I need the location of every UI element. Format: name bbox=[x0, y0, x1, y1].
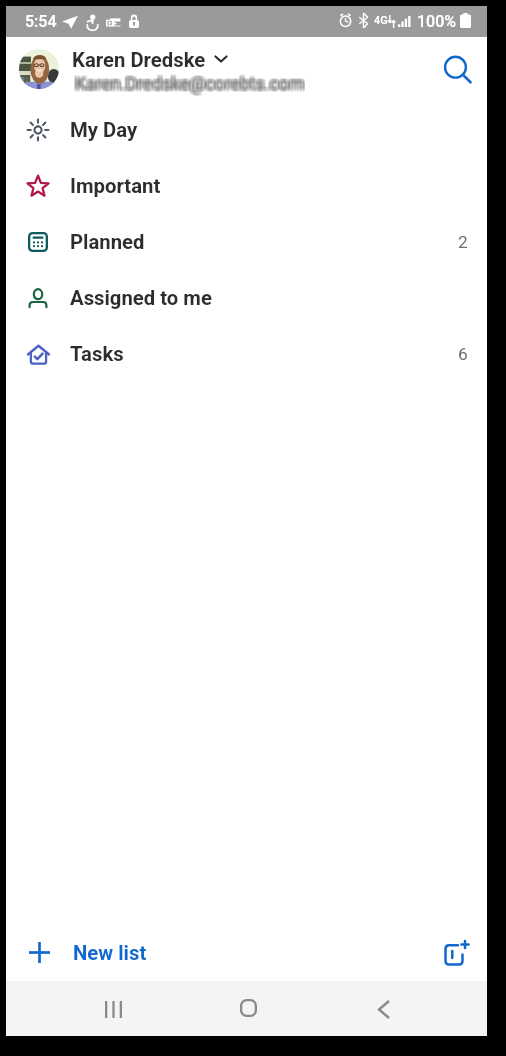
staticText: Karen.Dredske@corebts.com bbox=[76, 73, 306, 94]
button[interactable]: Recent apps bbox=[86, 982, 140, 1036]
staticText: Karen.Dredske@corebts.com bbox=[77, 73, 307, 94]
staticText: Karen.Dredske@corebts.com bbox=[77, 75, 307, 96]
staticText: Karen.Dredske@corebts.com bbox=[77, 76, 307, 97]
button[interactable] bbox=[6, 43, 431, 101]
staticText: Important bbox=[70, 174, 161, 198]
staticText: Karen.Dredske@corebts.com bbox=[75, 76, 305, 97]
staticText: Karen.Dredske@corebts.com bbox=[76, 73, 306, 94]
staticText: Karen.Dredske@corebts.com bbox=[77, 73, 307, 94]
staticText: Karen.Dredske@corebts.com bbox=[75, 75, 305, 96]
staticText: Karen.Dredske@corebts.com bbox=[76, 74, 306, 95]
staticText: Karen.Dredske@corebts.com bbox=[77, 73, 307, 94]
staticText: Karen.Dredske@corebts.com bbox=[77, 75, 307, 96]
staticText: 6 bbox=[458, 344, 468, 364]
staticText: 4G bbox=[374, 14, 388, 27]
staticText: Karen.Dredske@corebts.com bbox=[74, 73, 304, 94]
staticText: Karen.Dredske@corebts.com bbox=[77, 76, 307, 97]
staticText: Tasks bbox=[70, 342, 124, 366]
staticText: New list bbox=[73, 941, 147, 965]
staticText: Karen.Dredske@corebts.com bbox=[77, 72, 307, 93]
staticText: Karen.Dredske@corebts.com bbox=[73, 73, 303, 94]
staticText: Karen.Dredske@corebts.com bbox=[74, 74, 304, 95]
staticText: Karen.Dredske@corebts.com bbox=[76, 72, 306, 93]
staticText: Karen.Dredske@corebts.com bbox=[73, 75, 303, 96]
staticText: Karen.Dredske@corebts.com bbox=[77, 74, 307, 95]
staticText: Karen.Dredske@corebts.com bbox=[74, 75, 304, 96]
staticText: Karen.Dredske@corebts.com bbox=[77, 73, 307, 94]
staticText: Karen.Dredske@corebts.com bbox=[73, 76, 303, 97]
staticText: Karen.Dredske@corebts.com bbox=[74, 74, 304, 95]
staticText: Karen.Dredske@corebts.com bbox=[76, 75, 306, 96]
staticText: Karen.Dredske@corebts.com bbox=[73, 72, 303, 93]
staticText: Karen.Dredske@corebts.com bbox=[73, 72, 303, 93]
staticText: Karen.Dredske@corebts.com bbox=[73, 74, 303, 95]
staticText: Karen.Dredske@corebts.com bbox=[74, 73, 304, 94]
staticText: Karen.Dredske@corebts.com bbox=[76, 73, 306, 94]
staticText: 100% bbox=[417, 12, 457, 31]
staticText: Planned bbox=[70, 230, 145, 254]
staticText: Karen.Dredske@corebts.com bbox=[76, 75, 306, 96]
staticText: Karen.Dredske@corebts.com bbox=[76, 75, 306, 96]
staticText: Karen.Dredske@corebts.com bbox=[77, 74, 307, 95]
staticText: Karen.Dredske@corebts.com bbox=[74, 75, 304, 96]
staticText: Assigned to me bbox=[70, 286, 212, 310]
staticText: Karen.Dredske@corebts.com bbox=[73, 75, 303, 96]
staticText: 2 bbox=[458, 232, 468, 252]
staticText: Karen.Dredske@corebts.com bbox=[77, 75, 307, 96]
staticText: Karen.Dredske@corebts.com bbox=[73, 73, 303, 94]
staticText: Karen.Dredske@corebts.com bbox=[76, 76, 306, 97]
button[interactable]: Home bbox=[221, 981, 275, 1035]
button[interactable]: My Day bbox=[6, 100, 487, 156]
staticText: Karen.Dredske@corebts.com bbox=[76, 75, 306, 96]
staticText: 5:54 bbox=[25, 12, 57, 31]
button[interactable]: Back bbox=[357, 982, 411, 1036]
staticText: Karen.Dredske@corebts.com bbox=[75, 72, 305, 93]
staticText: Karen.Dredske@corebts.com bbox=[74, 75, 304, 96]
staticText: Karen.Dredske@corebts.com bbox=[73, 73, 303, 94]
staticText: Karen.Dredske@corebts.com bbox=[73, 76, 303, 97]
staticText: Karen.Dredske@corebts.com bbox=[74, 75, 304, 96]
staticText: Karen.Dredske@corebts.com bbox=[76, 72, 306, 93]
staticText: Karen.Dredske@corebts.com bbox=[76, 76, 306, 97]
staticText: Karen.Dredske@corebts.com bbox=[73, 74, 303, 95]
staticText: Karen.Dredske@corebts.com bbox=[74, 73, 304, 94]
button[interactable]: Assigned to me bbox=[6, 268, 487, 324]
staticText: Karen.Dredske@corebts.com bbox=[73, 73, 303, 94]
staticText: Karen.Dredske@corebts.com bbox=[77, 72, 307, 93]
staticText: Karen.Dredske@corebts.com bbox=[75, 75, 305, 96]
button[interactable]: Tasks bbox=[6, 324, 487, 380]
staticText: Karen.Dredske@corebts.com bbox=[74, 76, 304, 97]
staticText: Karen.Dredske@corebts.com bbox=[74, 73, 304, 94]
staticText: Karen.Dredske@corebts.com bbox=[75, 74, 305, 95]
button[interactable]: Important bbox=[6, 156, 487, 212]
staticText: Karen.Dredske@corebts.com bbox=[73, 75, 303, 96]
staticText: Karen.Dredske@corebts.com bbox=[74, 72, 304, 93]
staticText: Karen.Dredske@corebts.com bbox=[76, 74, 306, 95]
staticText: My Day bbox=[70, 118, 138, 142]
staticText: Karen.Dredske@corebts.com bbox=[77, 75, 307, 96]
staticText: Karen.Dredske@corebts.com bbox=[74, 72, 304, 93]
staticText: Karen Dredske bbox=[72, 48, 206, 72]
button[interactable] bbox=[6, 922, 426, 982]
staticText: Karen.Dredske@corebts.com bbox=[73, 75, 303, 96]
button[interactable]: Planned bbox=[6, 212, 487, 268]
staticText: Karen.Dredske@corebts.com bbox=[74, 76, 304, 97]
staticText: Karen.Dredske@corebts.com bbox=[76, 73, 306, 94]
staticText: Karen.Dredske@corebts.com bbox=[75, 73, 305, 94]
button[interactable]: New group bbox=[429, 925, 483, 979]
staticText: Karen.Dredske@corebts.com bbox=[75, 73, 305, 94]
button[interactable]: Search bbox=[431, 45, 485, 99]
